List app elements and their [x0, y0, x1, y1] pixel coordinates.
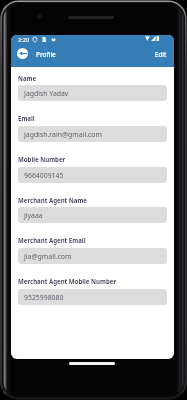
staticText: jia@gmail.com	[24, 252, 72, 261]
staticText: 2:20	[18, 36, 30, 42]
staticText: Name	[18, 74, 37, 82]
button[interactable]: 9664009145	[18, 167, 167, 183]
button[interactable]: 9525998080	[18, 289, 167, 305]
button[interactable]: Profile	[36, 49, 56, 59]
staticText: 9525998080	[24, 293, 64, 302]
staticText: Edit	[155, 50, 167, 59]
staticText: Merchant Agent Name	[18, 196, 88, 204]
button[interactable]: jia@gmail.com	[18, 248, 167, 264]
button[interactable]: Jagdish Yadav	[18, 85, 167, 101]
staticText: 9664009145	[24, 171, 64, 180]
button[interactable]: jiyaaa	[18, 207, 167, 223]
staticText: jiyaaa	[24, 211, 43, 220]
staticText: Merchant Agent Email	[18, 236, 86, 244]
staticText: Jagdish Yadav	[24, 89, 69, 98]
button[interactable]: Back	[17, 48, 28, 59]
staticText: Mobile Number	[18, 155, 66, 163]
staticText: Email	[18, 114, 35, 122]
staticText: Merchant Agent Mobile Number	[18, 277, 117, 285]
button[interactable]: Edit	[151, 47, 171, 62]
button[interactable]: jagdish.rain@gmail.com	[18, 126, 167, 142]
staticText: jagdish.rain@gmail.com	[24, 130, 102, 139]
staticText: Profile	[36, 50, 56, 59]
